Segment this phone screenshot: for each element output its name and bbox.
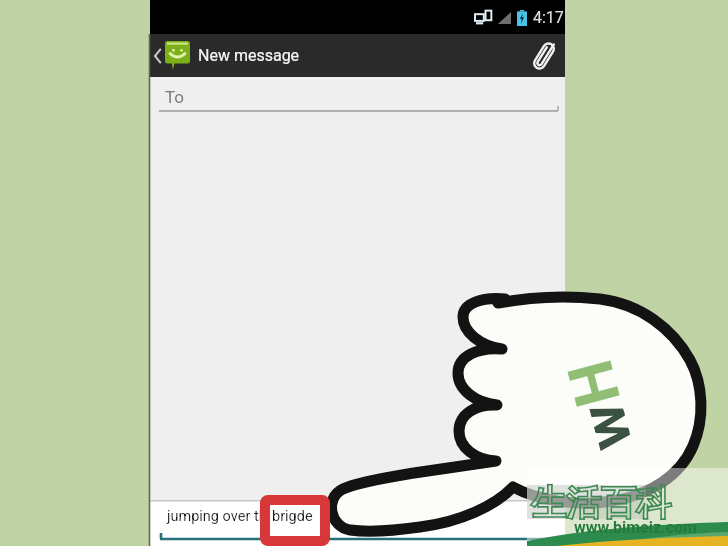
staticText: H <box>553 353 635 414</box>
button[interactable]: jumping over th <box>150 500 565 546</box>
button[interactable]: Navigate up <box>153 41 192 70</box>
staticText: jumping over th <box>167 508 267 525</box>
staticText: www.bimeiz.com <box>574 518 697 537</box>
staticText: brigde <box>272 508 313 525</box>
staticText: 4:17 <box>533 8 564 27</box>
staticText: 生活百科 <box>531 481 671 525</box>
staticText: To <box>165 87 185 107</box>
staticText: w <box>564 395 647 458</box>
staticText: New message <box>198 46 300 65</box>
button[interactable]: Attach <box>522 34 565 77</box>
button[interactable]: To <box>150 77 565 117</box>
